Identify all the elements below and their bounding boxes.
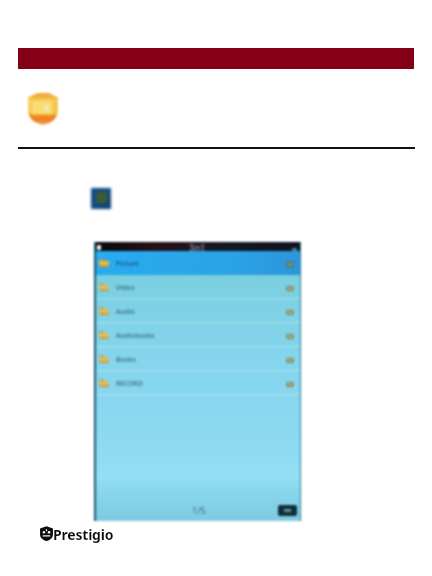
staticText: Audio: [116, 307, 135, 316]
button[interactable]: RECORD: [94, 371, 301, 395]
staticText: Picture: [116, 259, 139, 268]
staticText: 3in1: [189, 242, 206, 251]
button[interactable]: App icon: [91, 188, 111, 209]
button[interactable]: Audio: [94, 299, 301, 323]
button[interactable]: Audiobooks: [94, 323, 301, 347]
button[interactable]: Picture: [94, 251, 301, 275]
staticText: Prestigio: [53, 525, 114, 544]
staticText: Books: [116, 355, 136, 364]
button[interactable]: Video: [94, 275, 301, 299]
button[interactable]: Menu: [278, 505, 297, 516]
staticText: 1/5: [192, 504, 206, 516]
button[interactable]: Books: [94, 347, 301, 371]
staticText: Audiobooks: [116, 331, 155, 340]
staticText: Video: [116, 283, 135, 292]
staticText: RECORD: [116, 379, 143, 388]
